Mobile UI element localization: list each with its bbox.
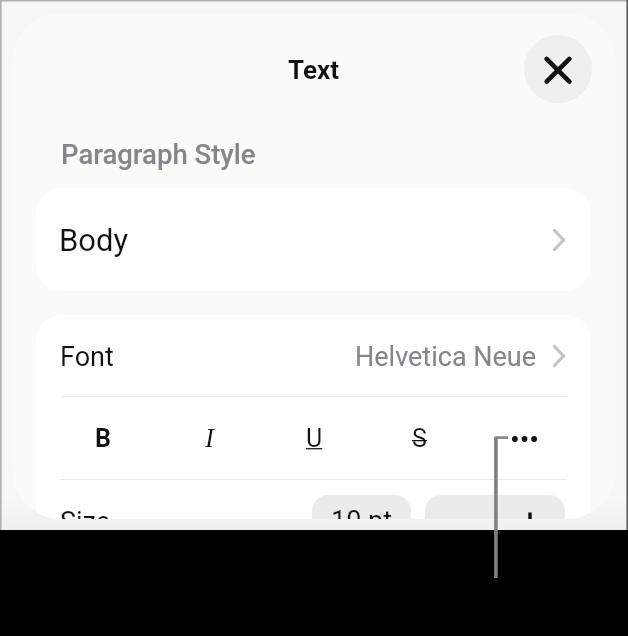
button[interactable]: Decrease font size	[425, 495, 495, 519]
button[interactable]: I	[156, 397, 262, 479]
staticText: U	[306, 424, 323, 453]
staticText: Text	[288, 55, 340, 85]
button[interactable]: Close	[524, 35, 592, 103]
staticText: Helvetica Neue	[355, 341, 537, 373]
staticText: S	[412, 424, 427, 453]
staticText: B	[95, 424, 111, 453]
staticText: 10 pt	[331, 505, 393, 519]
button[interactable]: S	[367, 397, 472, 479]
button[interactable]: 10 pt	[312, 495, 411, 519]
staticText: Size	[60, 506, 111, 519]
button[interactable]: U	[262, 397, 367, 479]
button[interactable]: Increase font size	[495, 495, 565, 519]
staticText: I	[205, 423, 214, 453]
staticText: Body	[59, 222, 129, 258]
button[interactable]: Body	[36, 188, 591, 291]
button[interactable]: Font	[36, 315, 591, 396]
button[interactable]: B	[50, 397, 156, 479]
staticText: Paragraph Style	[61, 138, 256, 170]
button[interactable]: More formatting options	[472, 397, 577, 479]
staticText: Font	[60, 341, 114, 373]
